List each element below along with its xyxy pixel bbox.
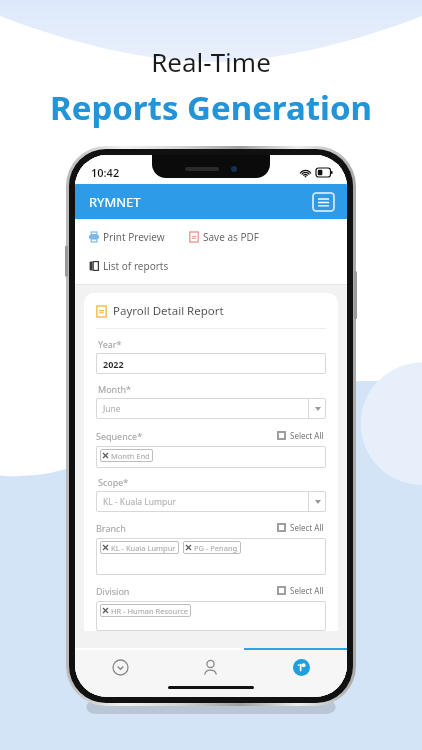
staticText: Month End [111,451,150,461]
button[interactable]: Print Preview [89,228,165,246]
staticText: Select All [290,522,324,533]
staticText: Branch [96,522,126,534]
staticText: Month* [98,383,131,395]
staticText: 10:42 [91,165,120,180]
staticText: Print Preview [103,230,165,244]
button[interactable]: KL - Kuala Lumpur [96,538,326,575]
staticText: Save as PDF [203,230,259,244]
staticText: Real-Time [151,44,271,79]
staticText: RYMNET [89,193,141,211]
button[interactable]: Menu [312,192,335,212]
button[interactable]: Save as PDF [189,228,259,246]
button[interactable]: KL - Kuala Lumpur [96,491,326,512]
button[interactable]: HR - Human Resource [96,601,326,631]
staticText: Select All [290,585,324,596]
staticText: Select All [290,430,324,441]
button[interactable]: Profile [165,650,256,684]
button[interactable]: List of reports [89,257,169,275]
staticText: Division [96,585,130,597]
staticText: 2022 [103,358,124,370]
button[interactable]: Reports [256,650,347,684]
button[interactable]: June [96,398,326,419]
staticText: HR - Human Resource [111,606,188,616]
staticText: Year* [98,338,122,350]
staticText: List of reports [103,259,169,273]
button[interactable]: Select All [275,520,326,535]
staticText: KL - Kuala Lumpur [111,543,176,553]
staticText: Scope* [98,476,129,488]
button[interactable]: Select All [275,583,326,598]
button[interactable]: Month End [96,446,326,468]
staticText: Reports Generation [50,85,372,130]
button[interactable]: Dashboard [75,650,165,684]
button[interactable]: 2022 [96,353,326,374]
staticText: Payroll Detail Report [113,303,224,319]
staticText: KL - Kuala Lumpur [103,496,308,508]
button[interactable]: Select All [275,428,326,443]
staticText: June [103,403,308,415]
staticText: PG - Penang [194,543,238,553]
staticText: Sequence* [96,430,143,442]
